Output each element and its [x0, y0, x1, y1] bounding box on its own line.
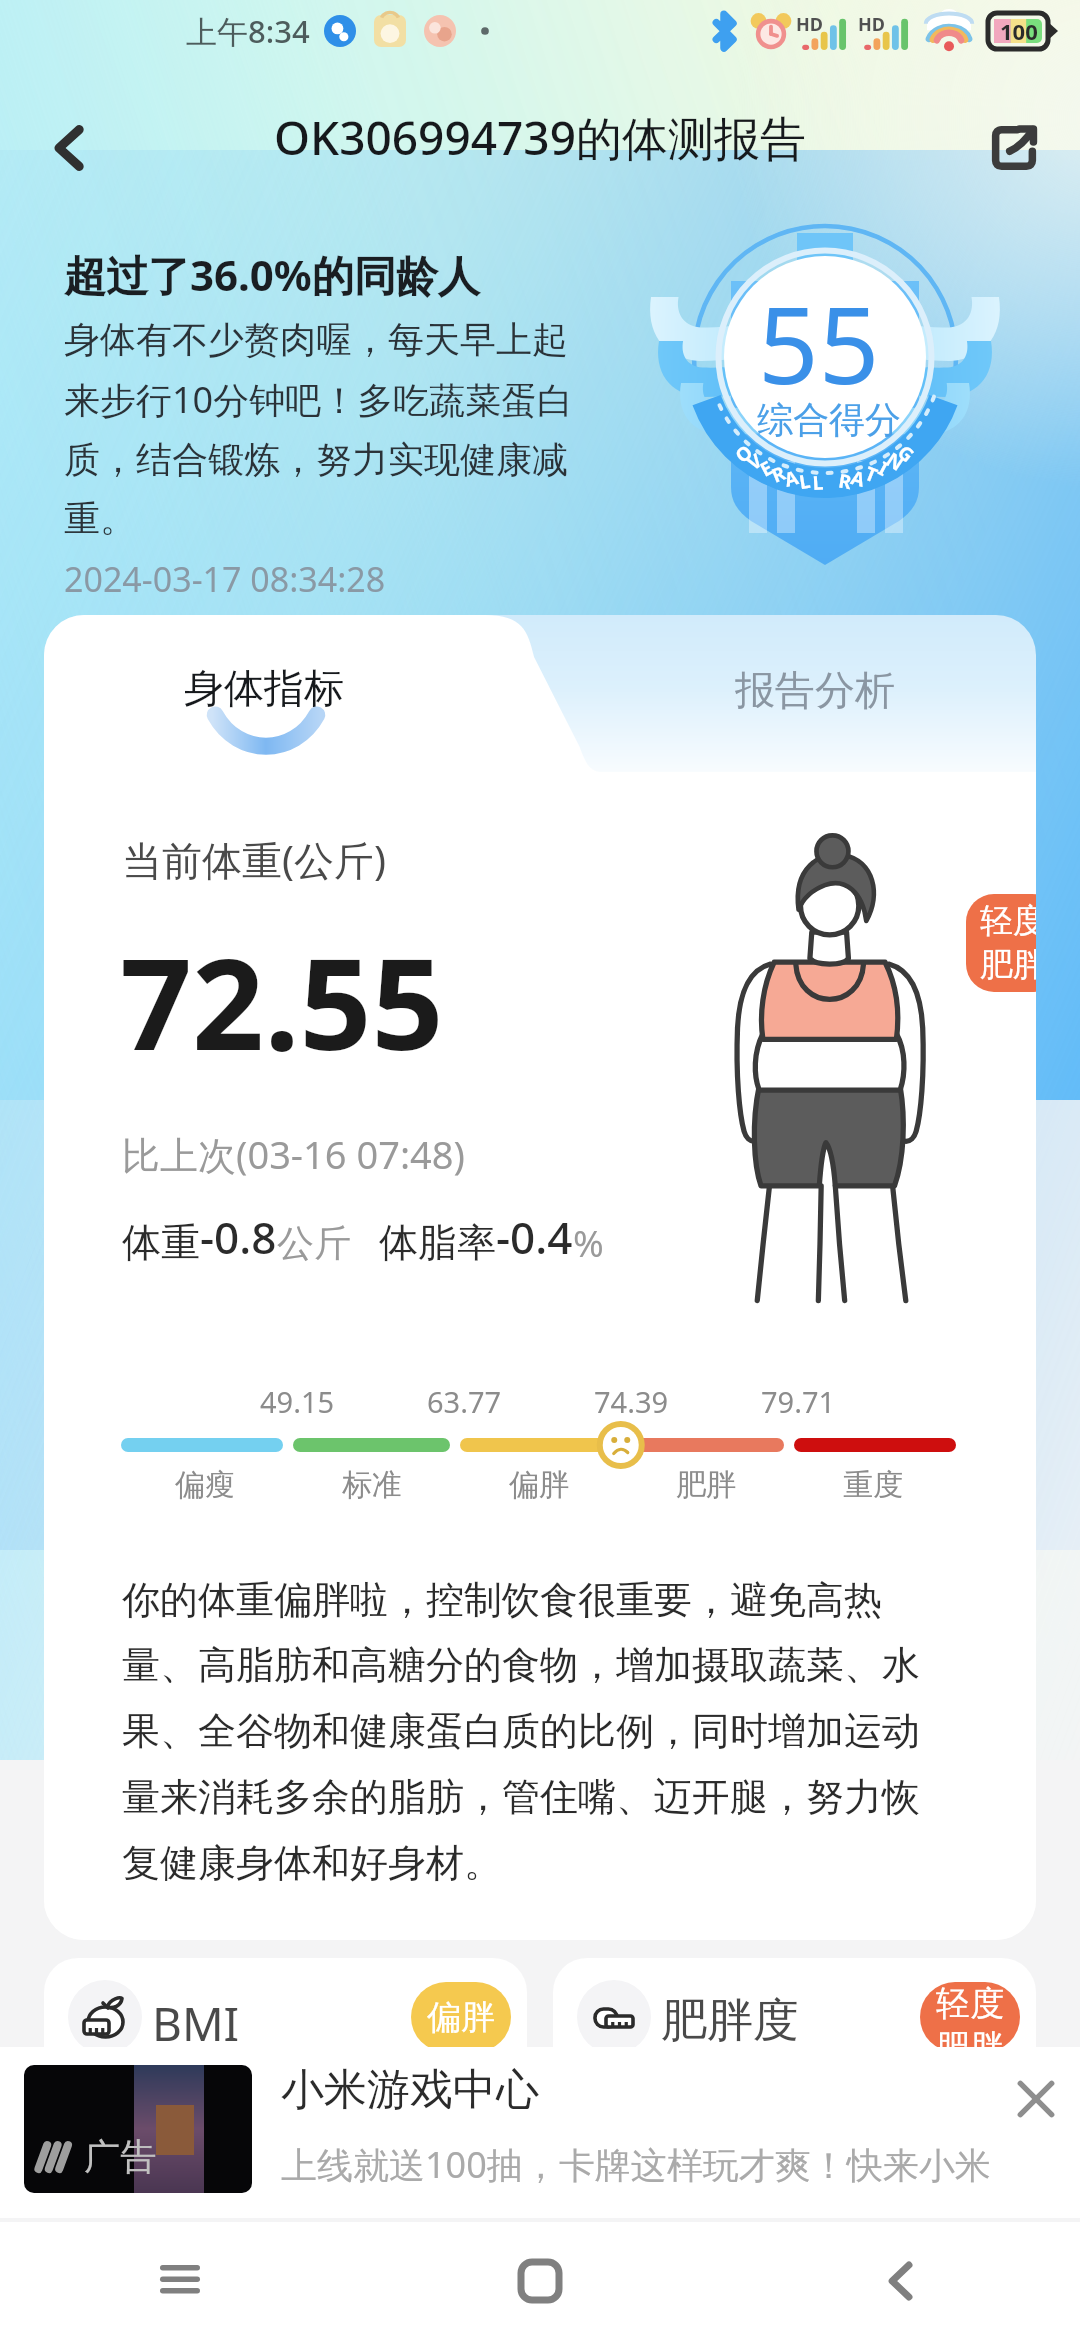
- button[interactable]: BMI: [44, 1958, 527, 2148]
- staticText: 身体指标: [184, 663, 344, 713]
- staticText: 偏胖: [509, 1466, 569, 1504]
- staticText: BMI: [152, 1992, 240, 2055]
- staticText: HD: [858, 12, 885, 37]
- staticText: 79.71: [761, 1382, 836, 1421]
- staticText: %: [573, 1217, 604, 1267]
- staticText: 上线就送100抽，卡牌这样玩才爽！快来小米游…: [281, 2140, 1011, 2189]
- staticText: 55: [758, 271, 880, 415]
- staticText: 体重: [122, 1218, 200, 1267]
- staticText: 轻度 肥胖: [936, 1982, 1004, 2052]
- button[interactable]: Back: [720, 2222, 1080, 2340]
- staticText: 身体有不少赘肉喔，每天早上起 来步行10分钟吧！多吃蔬菜蛋白 质，结合锻炼，努力…: [64, 317, 574, 542]
- staticText: 当前体重(公斤): [122, 832, 386, 887]
- staticText: 100: [1000, 16, 1038, 46]
- button[interactable]: Home: [360, 2222, 720, 2340]
- button[interactable]: Close ad: [1000, 2063, 1072, 2135]
- button[interactable]: 肥胖度: [553, 1958, 1036, 2148]
- staticText: OK306994739的体测报告: [274, 106, 806, 169]
- staticText: 上午8:34: [186, 10, 310, 52]
- button[interactable]: 报告分析: [504, 615, 1036, 773]
- staticText: -0.8: [200, 1207, 277, 1267]
- button[interactable]: 身体指标: [44, 615, 504, 773]
- button[interactable]: Back: [26, 104, 114, 192]
- staticText: 肥胖度: [661, 1992, 799, 2050]
- staticText: 体脂率: [379, 1218, 496, 1267]
- staticText: 广告: [84, 2134, 156, 2179]
- staticText: 轻度 肥胖: [980, 900, 1036, 986]
- staticText: 比上次(03-16 07:48): [122, 1128, 465, 1180]
- button[interactable]: Share: [970, 104, 1058, 192]
- staticText: HD: [796, 12, 823, 37]
- staticText: 报告分析: [735, 665, 895, 715]
- staticText: 小米游戏中心: [281, 2063, 539, 2117]
- staticText: 63.77: [427, 1382, 502, 1421]
- staticText: 偏瘦: [175, 1466, 235, 1504]
- staticText: 72.55: [120, 915, 444, 1087]
- staticText: 标准: [342, 1466, 402, 1504]
- staticText: 偏胖: [427, 1996, 495, 2039]
- staticText: 你的体重偏胖啦，控制饮食很重要，避免高热 量、高脂肪和高糖分的食物，增加摄取蔬菜…: [122, 1576, 920, 1888]
- staticText: 超过了36.0%的同龄人: [64, 246, 480, 303]
- staticText: -0.4: [496, 1207, 573, 1267]
- button[interactable]: 广告: [0, 2047, 1080, 2218]
- staticText: 2024-03-17 08:34:28: [64, 556, 386, 602]
- staticText: 肥胖: [676, 1466, 736, 1504]
- staticText: 重度: [843, 1466, 903, 1504]
- staticText: 49.15: [260, 1382, 335, 1421]
- button[interactable]: Recents: [0, 2222, 360, 2340]
- staticText: 74.39: [594, 1382, 669, 1421]
- staticText: 公斤: [277, 1220, 351, 1267]
- staticText: 综合得分: [757, 397, 901, 442]
